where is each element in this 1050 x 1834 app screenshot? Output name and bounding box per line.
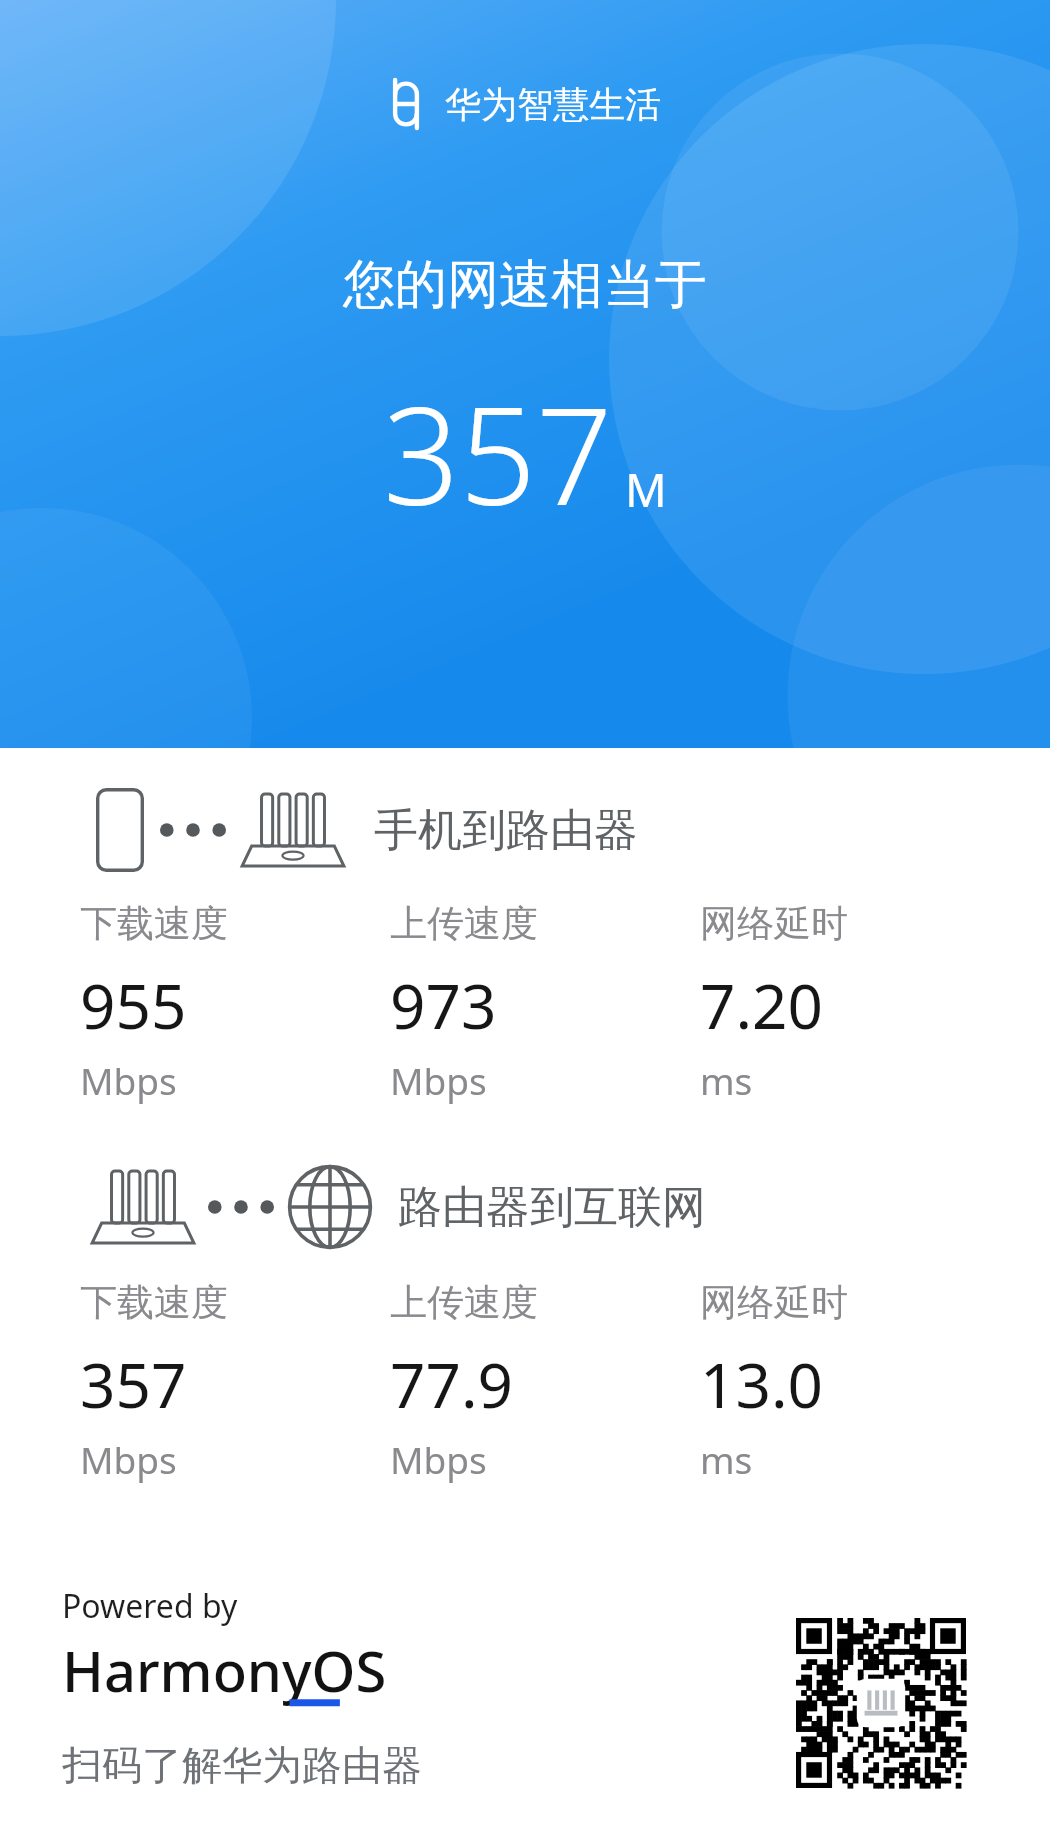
staticText: ms	[700, 1055, 753, 1105]
staticText: 网络延时	[700, 900, 848, 947]
staticText: Mbps	[390, 1434, 487, 1484]
button[interactable]: 上传速度	[390, 900, 700, 1105]
staticText: Mbps	[390, 1055, 487, 1105]
staticText: Mbps	[80, 1055, 177, 1105]
button[interactable]: Router	[90, 1163, 1050, 1251]
staticText: 扫码了解华为路由器	[62, 1740, 422, 1790]
button[interactable]: 下载速度	[80, 1279, 390, 1484]
staticText: ms	[700, 1434, 753, 1484]
other: Huawei Smart Life	[389, 80, 423, 128]
staticText: 955	[80, 963, 187, 1047]
staticText: 手机到路由器	[374, 803, 638, 858]
staticText: 7.20	[700, 963, 824, 1047]
staticText: 357	[80, 1342, 187, 1426]
staticText: 您的网速相当于	[343, 252, 707, 318]
other: Internet	[286, 1163, 374, 1251]
staticText: Mbps	[80, 1434, 177, 1484]
button[interactable]: 网络延时	[700, 1279, 1010, 1484]
staticText: 下载速度	[80, 1279, 228, 1326]
button[interactable]: QR code to learn about Huawei routers	[796, 1618, 966, 1788]
button[interactable]: Huawei Smart Life	[389, 80, 661, 128]
other: Router	[90, 1167, 196, 1247]
other: Router	[240, 790, 346, 870]
staticText: 上传速度	[390, 900, 538, 947]
staticText: 华为智慧生活	[445, 82, 661, 127]
button[interactable]: 下载速度	[80, 900, 390, 1105]
staticText: Powered by	[62, 1584, 238, 1628]
staticText: 网络延时	[700, 1279, 848, 1326]
staticText: 357	[383, 362, 613, 545]
button[interactable]: 上传速度	[390, 1279, 700, 1484]
staticText: 上传速度	[390, 1279, 538, 1326]
staticText: 下载速度	[80, 900, 228, 947]
staticText: 13.0	[700, 1342, 824, 1426]
button[interactable]: Phone	[96, 788, 1050, 872]
staticText: M	[625, 458, 667, 521]
staticText: 路由器到互联网	[398, 1180, 706, 1235]
button[interactable]: 网络延时	[700, 900, 1010, 1105]
other: Phone	[96, 788, 144, 872]
staticText: HarmonyOS	[62, 1632, 387, 1708]
staticText: 77.9	[390, 1342, 514, 1426]
staticText: 973	[390, 963, 497, 1047]
